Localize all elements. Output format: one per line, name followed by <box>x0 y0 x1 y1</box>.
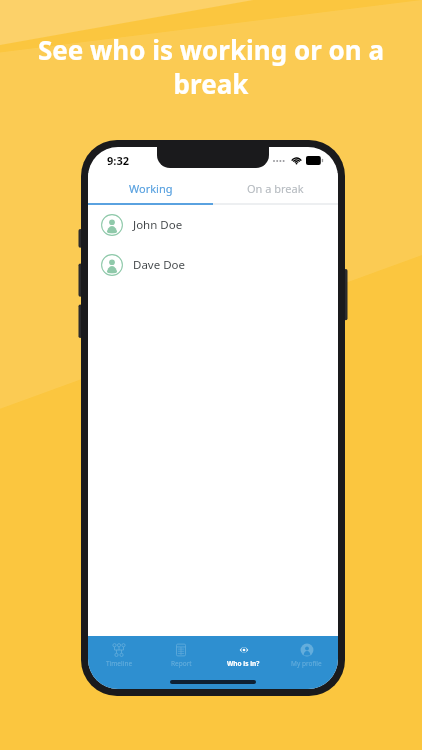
staticText: John Doe <box>133 217 183 233</box>
button[interactable]: On a break <box>213 173 338 203</box>
staticText: On a break <box>247 181 304 196</box>
staticText: Report <box>171 659 192 668</box>
button[interactable]: Report <box>150 636 212 674</box>
button[interactable]: My profile <box>275 636 338 674</box>
button[interactable]: Dave Doe <box>88 245 338 285</box>
button[interactable]: Timeline <box>88 636 150 674</box>
staticText: Timeline <box>106 659 133 668</box>
staticText: Dave Doe <box>133 257 186 273</box>
staticText: Who is in? <box>227 659 260 668</box>
staticText: My profile <box>291 659 322 668</box>
button[interactable]: John Doe <box>88 205 338 245</box>
staticText: See who is working or on a break <box>20 32 402 101</box>
button[interactable]: Who is in? <box>212 636 275 674</box>
button[interactable]: Working <box>88 173 213 203</box>
staticText: Working <box>129 181 173 196</box>
staticText: 9:32 <box>107 153 129 168</box>
